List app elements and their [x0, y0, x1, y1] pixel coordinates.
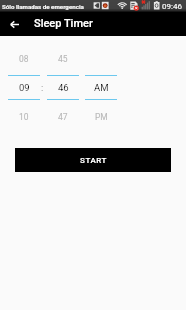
- staticText: Sólo llamadas de emergencia: [2, 3, 84, 10]
- staticText: 09:46: [162, 2, 182, 11]
- staticText: AM: [94, 82, 109, 93]
- button[interactable]: AM: [85, 79, 117, 95]
- staticText: START: [80, 156, 107, 165]
- button[interactable]: PM: [85, 109, 117, 125]
- button[interactable]: 10: [8, 109, 40, 125]
- button[interactable]: 46: [47, 79, 79, 95]
- button[interactable]: 09: [8, 79, 40, 95]
- staticText: 09: [19, 82, 30, 93]
- staticText: Sleep Timer: [34, 17, 93, 30]
- staticText: 46: [58, 82, 69, 93]
- staticText: :: [41, 82, 44, 93]
- button[interactable]: Back: [3, 13, 25, 35]
- button[interactable]: START: [15, 148, 171, 172]
- button[interactable]: 47: [47, 109, 79, 125]
- button[interactable]: 45: [47, 51, 79, 67]
- button[interactable]: 08: [8, 51, 40, 67]
- staticText: 47: [58, 112, 68, 122]
- staticText: 10: [19, 112, 29, 122]
- staticText: 45: [58, 54, 68, 64]
- staticText: PM: [95, 112, 108, 122]
- staticText: 08: [19, 54, 29, 64]
